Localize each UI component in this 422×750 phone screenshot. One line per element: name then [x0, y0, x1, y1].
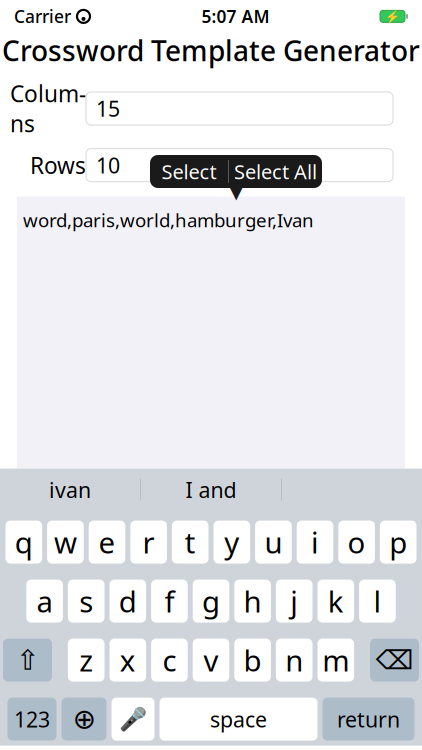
staticText: Rows: [30, 150, 86, 180]
button[interactable]: k: [317, 580, 354, 623]
button[interactable]: h: [234, 580, 271, 623]
button[interactable]: Dictation: [111, 698, 154, 741]
button[interactable]: y: [213, 521, 250, 564]
staticText: q: [15, 523, 33, 562]
staticText: x: [120, 641, 136, 680]
staticText: Select All: [234, 158, 317, 185]
button[interactable]: Select All: [229, 155, 322, 188]
staticText: Columns: [10, 78, 86, 139]
button[interactable]: x: [109, 639, 146, 682]
staticText: i: [311, 523, 319, 562]
staticText: 10: [96, 151, 120, 179]
staticText: n: [285, 641, 303, 680]
button[interactable]: n: [276, 639, 312, 682]
button[interactable]: l: [359, 580, 396, 623]
button[interactable]: g: [193, 580, 229, 623]
staticText: a: [37, 582, 53, 621]
button[interactable]: u: [255, 521, 292, 564]
button[interactable]: z: [68, 639, 104, 682]
staticText: g: [202, 582, 220, 621]
button[interactable]: f: [151, 580, 188, 623]
staticText: w: [54, 523, 77, 562]
staticText: ▼: [228, 180, 243, 202]
button[interactable]: r: [130, 521, 167, 564]
button[interactable]: e: [89, 521, 125, 564]
staticText: Select: [161, 158, 216, 185]
button[interactable]: 123: [7, 698, 56, 741]
button[interactable]: word,paris,world,hamburger,Ivan: [17, 197, 405, 469]
staticText: r: [143, 523, 155, 562]
staticText: t: [185, 523, 196, 562]
button[interactable]: o: [338, 521, 375, 564]
staticText: k: [328, 582, 344, 621]
button[interactable]: Shift: [3, 639, 52, 682]
button[interactable]: 15: [86, 92, 393, 125]
button[interactable]: Next keyboard: [61, 698, 106, 741]
staticText: ⇧: [16, 644, 39, 676]
staticText: y: [224, 523, 239, 562]
staticText: h: [244, 582, 262, 621]
staticText: space: [210, 705, 267, 733]
staticText: u: [264, 523, 282, 562]
button[interactable]: d: [109, 580, 146, 623]
staticText: Crossword Template Generator: [2, 32, 420, 69]
staticText: c: [162, 641, 176, 680]
button[interactable]: s: [68, 580, 104, 623]
button[interactable]: space: [159, 698, 317, 741]
staticText: o: [348, 523, 366, 562]
button[interactable]: w: [47, 521, 84, 564]
staticText: l: [373, 582, 381, 621]
staticText: z: [79, 641, 93, 680]
staticText: Carrier: [14, 5, 71, 28]
button[interactable]: a: [26, 580, 63, 623]
staticText: b: [244, 641, 262, 680]
staticText: p: [389, 523, 407, 562]
staticText: m: [322, 641, 349, 680]
staticText: ⊕: [72, 703, 95, 735]
button[interactable]: 10: [86, 149, 393, 182]
staticText: f: [164, 582, 174, 621]
staticText: e: [98, 523, 115, 562]
staticText: 5:07 AM: [201, 5, 269, 28]
button[interactable]: c: [151, 639, 188, 682]
button[interactable]: v: [193, 639, 229, 682]
button[interactable]: j: [276, 580, 312, 623]
button[interactable]: t: [172, 521, 208, 564]
staticText: s: [79, 582, 93, 621]
button[interactable]: b: [234, 639, 271, 682]
staticText: I and: [185, 475, 236, 504]
button[interactable]: return: [322, 698, 414, 741]
staticText: d: [119, 582, 137, 621]
staticText: ivan: [49, 475, 91, 504]
staticText: return: [337, 705, 400, 733]
button[interactable]: m: [317, 639, 354, 682]
button[interactable]: I and: [141, 469, 281, 511]
button[interactable]: ivan: [0, 469, 140, 511]
button[interactable]: p: [380, 521, 416, 564]
staticText: 123: [14, 705, 50, 733]
button[interactable]: Select: [150, 155, 228, 188]
staticText: word,paris,world,hamburger,Ivan: [23, 208, 314, 232]
staticText: 🎤: [119, 706, 147, 732]
staticText: v: [203, 641, 218, 680]
staticText: 15: [96, 94, 120, 123]
staticText: ⚡: [385, 9, 400, 23]
button[interactable]: q: [5, 521, 42, 564]
button[interactable]: i: [297, 521, 333, 564]
staticText: ⌫: [375, 645, 413, 675]
button[interactable]: Delete: [370, 639, 419, 682]
staticText: j: [290, 582, 298, 621]
